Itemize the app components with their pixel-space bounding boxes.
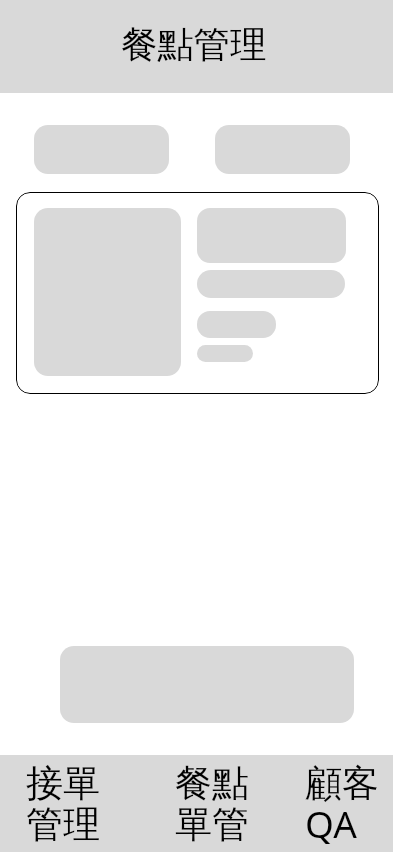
staticText: 餐點單管 <box>175 760 262 848</box>
staticText: 顧客QA <box>305 760 393 849</box>
button[interactable]: 接單管理 <box>0 755 131 852</box>
button[interactable]: 餐點單管 <box>131 755 262 852</box>
button[interactable]: 狀態篩選 <box>215 125 350 174</box>
staticText: 餐點管理 <box>121 22 267 68</box>
button[interactable]: 餐點項目 <box>16 192 379 394</box>
button[interactable]: 類別篩選 <box>34 125 169 174</box>
button[interactable]: 顧客QA <box>262 755 393 852</box>
staticText: 接單管理 <box>26 760 131 848</box>
